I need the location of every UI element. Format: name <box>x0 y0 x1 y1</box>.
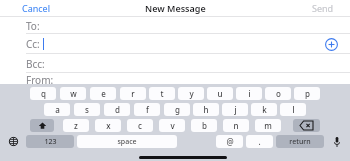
button[interactable]: n <box>223 119 249 132</box>
staticText: To: <box>26 19 40 33</box>
staticText: v <box>170 120 175 131</box>
button[interactable]: return <box>276 135 324 148</box>
button[interactable]: z <box>63 119 89 132</box>
button[interactable]: d <box>104 103 130 116</box>
button[interactable]: . <box>246 135 273 148</box>
staticText: p <box>305 88 310 99</box>
button[interactable]: Backspace <box>293 119 320 132</box>
button[interactable]: w <box>60 87 86 100</box>
button[interactable]: Send <box>312 2 334 14</box>
button[interactable]: k <box>251 103 277 116</box>
staticText: f <box>146 104 149 115</box>
staticText: Bcc: <box>26 57 45 71</box>
button[interactable]: a <box>44 103 70 116</box>
button[interactable]: e <box>90 87 116 100</box>
staticText: w <box>70 88 77 99</box>
staticText: h <box>203 104 209 115</box>
staticText: New Message <box>145 2 206 14</box>
staticText: q <box>41 88 46 99</box>
button[interactable]: c <box>127 119 153 132</box>
button[interactable]: Cancel <box>22 2 51 14</box>
staticText: k <box>262 104 267 115</box>
button[interactable]: m <box>255 119 281 132</box>
button[interactable]: h <box>193 103 219 116</box>
button[interactable]: q <box>30 87 56 100</box>
staticText: space <box>117 137 137 147</box>
button[interactable]: p <box>294 87 320 100</box>
staticText: x <box>106 120 111 131</box>
button[interactable]: t <box>149 87 175 100</box>
staticText: return <box>289 137 311 147</box>
staticText: e <box>101 88 106 99</box>
button[interactable]: space <box>77 135 177 148</box>
staticText: y <box>189 88 194 99</box>
button[interactable]: 123 <box>26 135 74 148</box>
button[interactable]: Shift <box>30 119 54 132</box>
button[interactable]: Add contact <box>322 35 340 53</box>
staticText: r <box>131 88 135 99</box>
button[interactable]: l <box>280 103 306 116</box>
staticText: b <box>202 120 207 131</box>
button[interactable]: Change keyboard language <box>6 135 20 148</box>
staticText: l <box>292 104 295 115</box>
button[interactable]: v <box>159 119 185 132</box>
button[interactable]: o <box>265 87 291 100</box>
staticText: c <box>138 120 142 131</box>
button[interactable]: b <box>191 119 217 132</box>
staticText: z <box>74 120 78 131</box>
staticText: Cancel <box>22 2 51 14</box>
staticText: s <box>85 104 89 115</box>
button[interactable]: g <box>164 103 190 116</box>
button[interactable]: Dictation <box>330 135 344 148</box>
staticText: g <box>175 104 180 115</box>
button[interactable]: s <box>74 103 100 116</box>
staticText: . <box>258 136 261 147</box>
button[interactable]: u <box>207 87 233 100</box>
staticText: From: <box>26 73 54 84</box>
button[interactable]: @ <box>216 135 243 148</box>
staticText: m <box>264 120 272 131</box>
staticText: j <box>234 104 237 115</box>
button[interactable]: i <box>236 87 262 100</box>
staticText: a <box>55 104 60 115</box>
staticText: o <box>276 88 281 99</box>
staticText: t <box>160 88 164 99</box>
staticText: @ <box>226 136 234 147</box>
staticText: u <box>217 88 223 99</box>
button[interactable]: f <box>134 103 160 116</box>
staticText: n <box>233 120 239 131</box>
staticText: i <box>248 88 251 99</box>
staticText: d <box>115 104 120 115</box>
button[interactable]: y <box>178 87 204 100</box>
button[interactable]: x <box>95 119 121 132</box>
staticText: Cc: <box>26 37 40 51</box>
button[interactable]: r <box>120 87 146 100</box>
staticText: Send <box>312 2 334 14</box>
staticText: 123 <box>44 137 57 147</box>
button[interactable]: j <box>222 103 248 116</box>
